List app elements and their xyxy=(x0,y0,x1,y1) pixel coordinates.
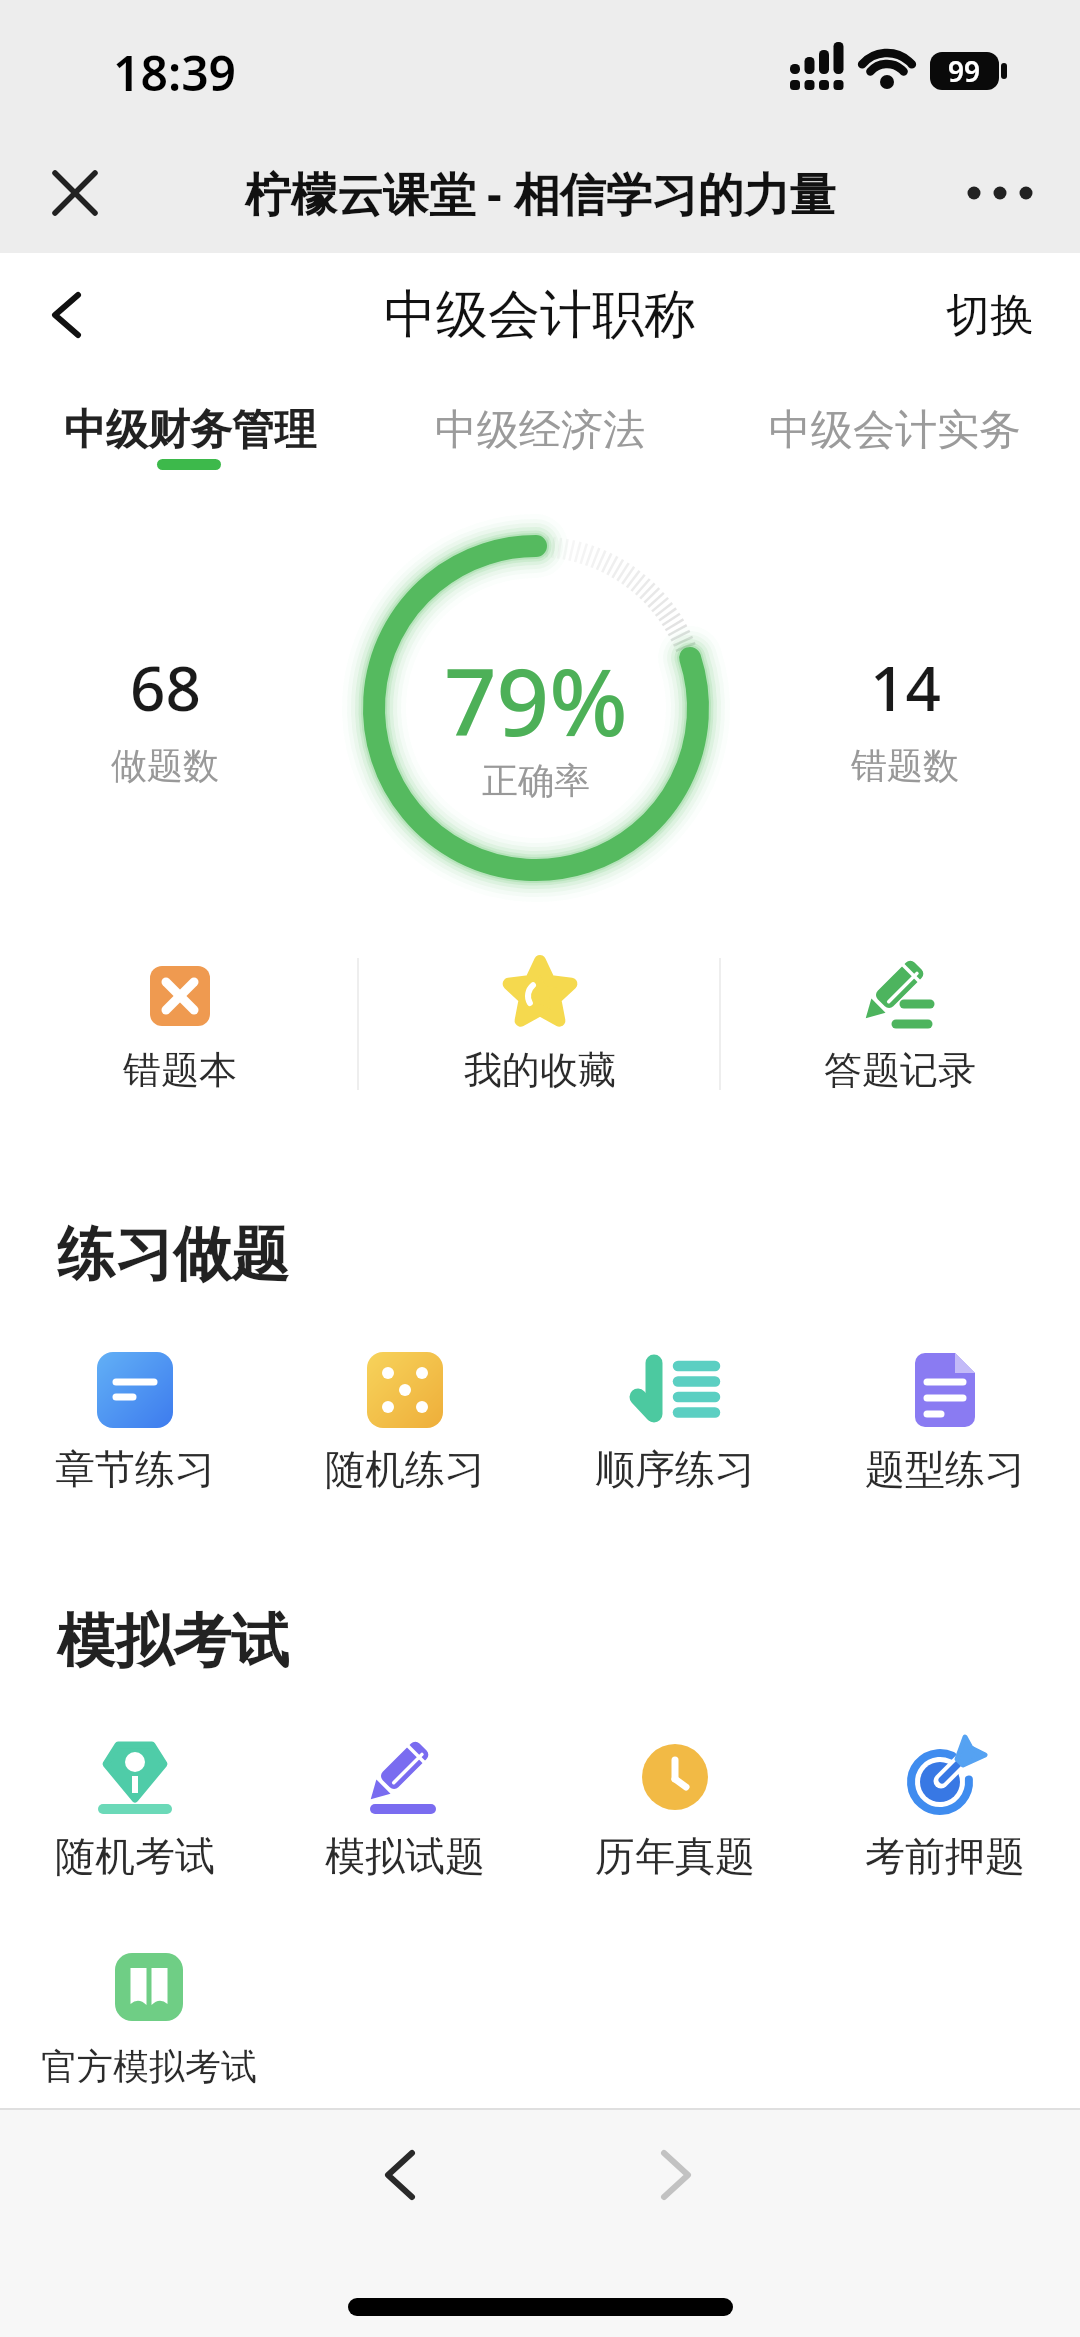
button[interactable] xyxy=(30,280,100,350)
button[interactable] xyxy=(950,158,1050,228)
staticText: 我的收藏 xyxy=(464,1046,616,1094)
button[interactable]: 中级经济法 xyxy=(390,398,690,462)
staticText: 错题本 xyxy=(123,1046,237,1094)
button[interactable]: 中级财务管理 xyxy=(40,398,340,462)
staticText: 正确率 xyxy=(482,758,590,803)
button[interactable] xyxy=(340,2130,460,2220)
staticText: 中级会计职称 xyxy=(384,282,696,348)
staticText: 练习做题 xyxy=(57,1218,289,1291)
button[interactable] xyxy=(360,958,720,1090)
staticText: 错题数 xyxy=(851,743,959,788)
staticText: 做题数 xyxy=(111,743,219,788)
button[interactable] xyxy=(616,2130,736,2220)
staticText: 历年真题 xyxy=(595,1831,755,1881)
staticText: 中级经济法 xyxy=(435,404,645,457)
button[interactable]: 题型练习 xyxy=(810,1348,1080,1518)
button[interactable]: 考前押题 xyxy=(810,1735,1080,1905)
staticText: 模拟考试 xyxy=(57,1605,289,1678)
button[interactable] xyxy=(720,958,1080,1090)
staticText: 章节练习 xyxy=(55,1444,215,1494)
staticText: 中级会计实务 xyxy=(769,404,1021,457)
staticText: 官方模拟考试 xyxy=(41,2044,257,2089)
button[interactable]: 随机考试 xyxy=(0,1735,270,1905)
staticText: 考前押题 xyxy=(865,1831,1025,1881)
staticText: 68 xyxy=(130,645,201,725)
staticText: 顺序练习 xyxy=(595,1444,755,1494)
staticText: 99 xyxy=(948,52,981,90)
staticText: 14 xyxy=(870,645,941,725)
staticText: 79% xyxy=(444,638,628,742)
button[interactable]: 模拟试题 xyxy=(270,1735,540,1905)
button[interactable]: 中级会计实务 xyxy=(740,398,1050,462)
button[interactable]: 章节练习 xyxy=(0,1348,270,1518)
staticText: 随机练习 xyxy=(325,1444,485,1494)
staticText: 模拟试题 xyxy=(325,1831,485,1881)
staticText: 中级财务管理 xyxy=(64,404,316,457)
button[interactable]: 随机练习 xyxy=(270,1348,540,1518)
staticText: 柠檬云课堂 - 相信学习的力量 xyxy=(245,162,836,225)
staticText: 题型练习 xyxy=(865,1444,1025,1494)
button[interactable]: 官方模拟考试 xyxy=(14,1945,284,2115)
staticText: 随机考试 xyxy=(55,1831,215,1881)
staticText: 切换 xyxy=(946,288,1034,343)
button[interactable] xyxy=(40,158,110,228)
button[interactable] xyxy=(0,958,360,1090)
button[interactable]: 切换 xyxy=(930,280,1050,350)
button[interactable]: 历年真题 xyxy=(540,1735,810,1905)
button[interactable]: 顺序练习 xyxy=(540,1348,810,1518)
staticText: 18:39 xyxy=(113,40,237,100)
staticText: 答题记录 xyxy=(824,1046,976,1094)
